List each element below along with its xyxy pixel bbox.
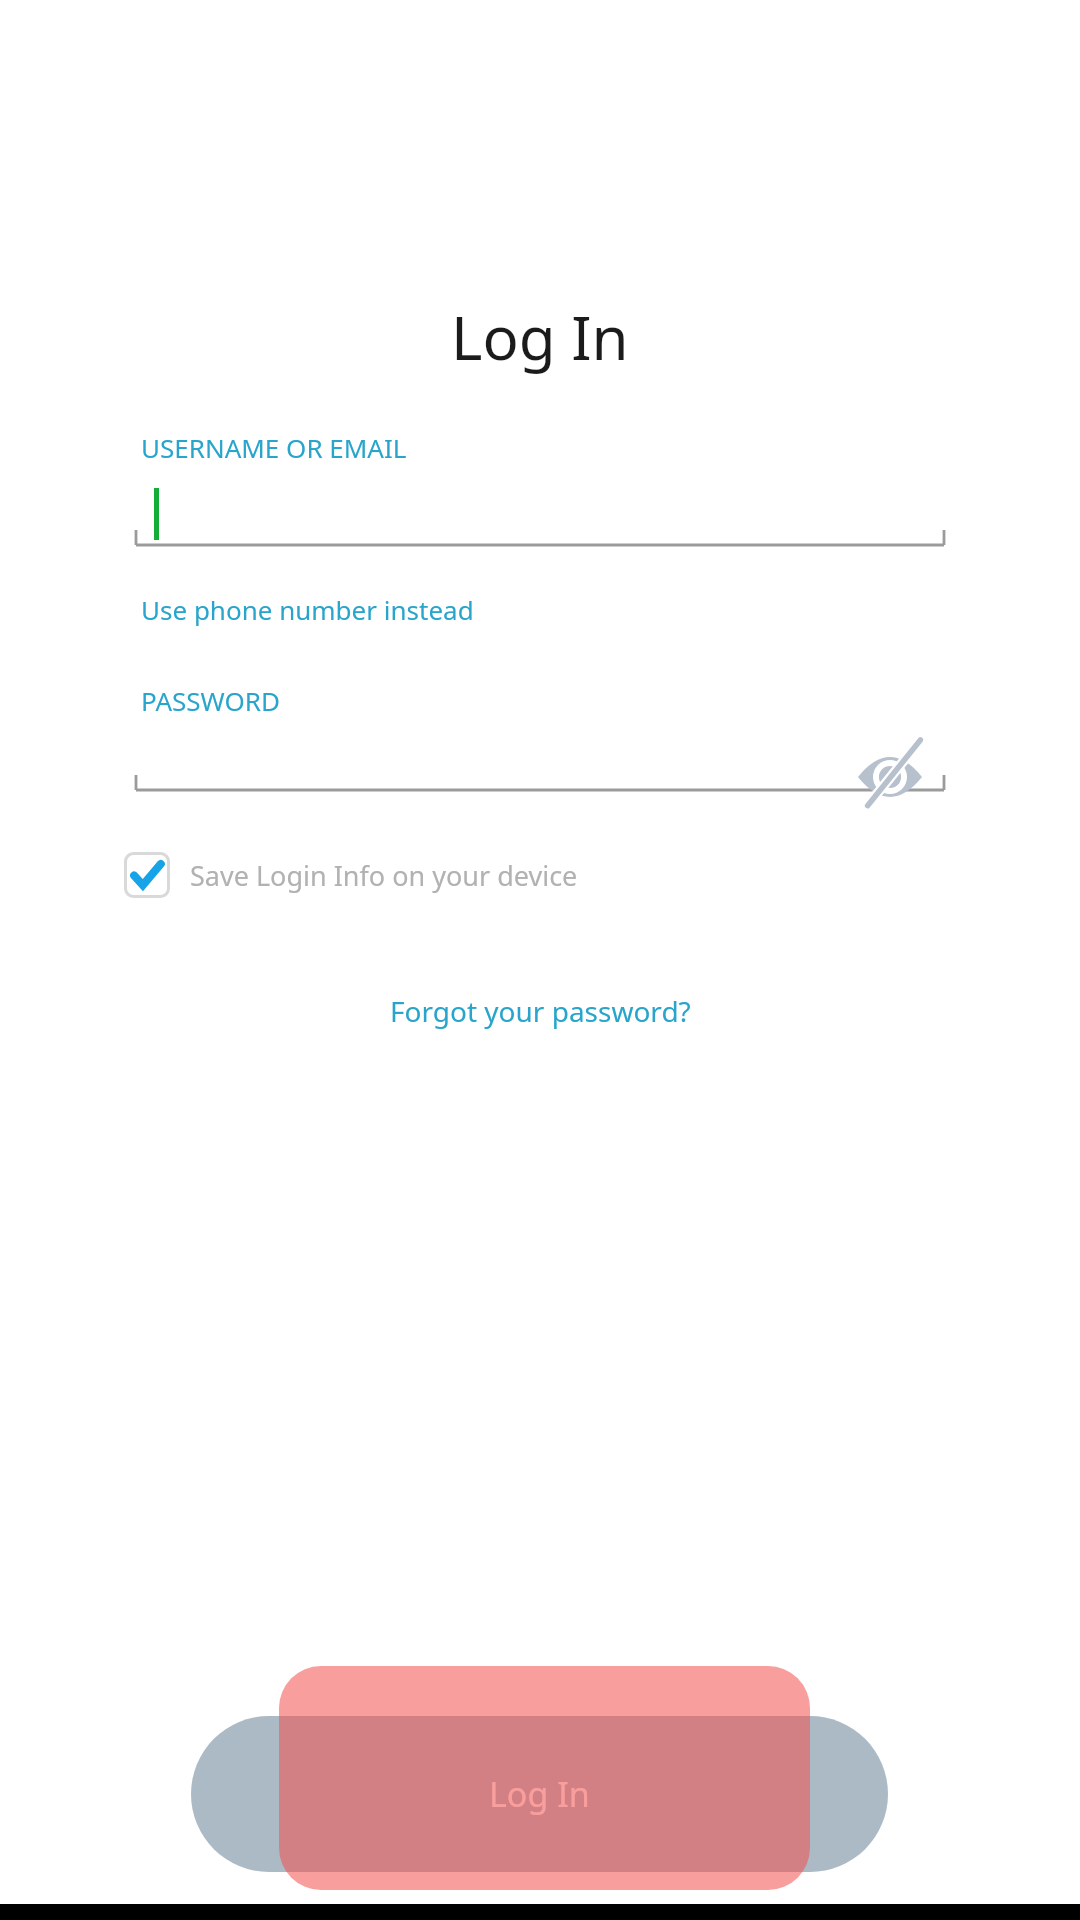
button[interactable]: Show password	[850, 740, 930, 814]
staticText: PASSWORD	[141, 683, 280, 718]
staticText: Log In	[489, 1771, 590, 1817]
staticText: Save Login Info on your device	[190, 857, 578, 894]
button[interactable]: Use phone number instead	[139, 588, 476, 631]
button[interactable]: Forgot your password?	[382, 986, 699, 1036]
button[interactable]: Log In	[191, 1716, 888, 1872]
staticText: USERNAME OR EMAIL	[141, 430, 407, 465]
button[interactable]: Save Login Info on your device	[120, 846, 582, 904]
staticText: Log In	[451, 296, 629, 378]
